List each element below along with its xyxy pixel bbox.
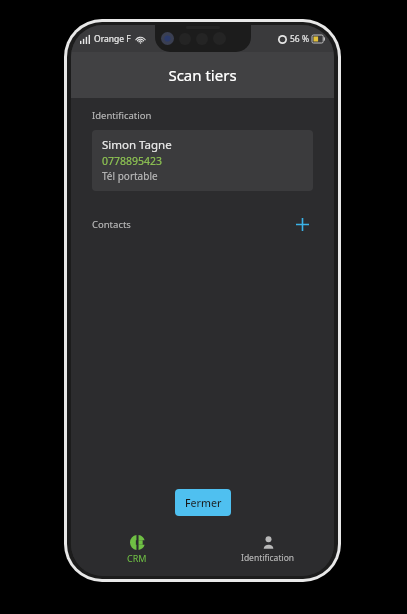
button[interactable]: Ajouter un contact (291, 213, 313, 235)
staticText: 0778895423 (102, 154, 163, 168)
button[interactable]: Identification (202, 532, 334, 576)
button[interactable]: Fermer (175, 489, 231, 516)
button[interactable]: CRM (71, 532, 202, 576)
staticText: Tél portable (102, 169, 158, 183)
staticText: Simon Tagne (102, 137, 172, 153)
staticText: Identification (241, 552, 295, 564)
staticText: Identification (92, 109, 152, 122)
staticText: Fermer (185, 496, 222, 510)
button[interactable]: Simon Tagne (92, 130, 313, 191)
staticText: CRM (127, 552, 147, 564)
staticText: 56 % (290, 33, 309, 45)
staticText: Contacts (92, 218, 131, 231)
staticText: Scan tiers (168, 65, 237, 85)
staticText: Orange F (94, 33, 131, 45)
